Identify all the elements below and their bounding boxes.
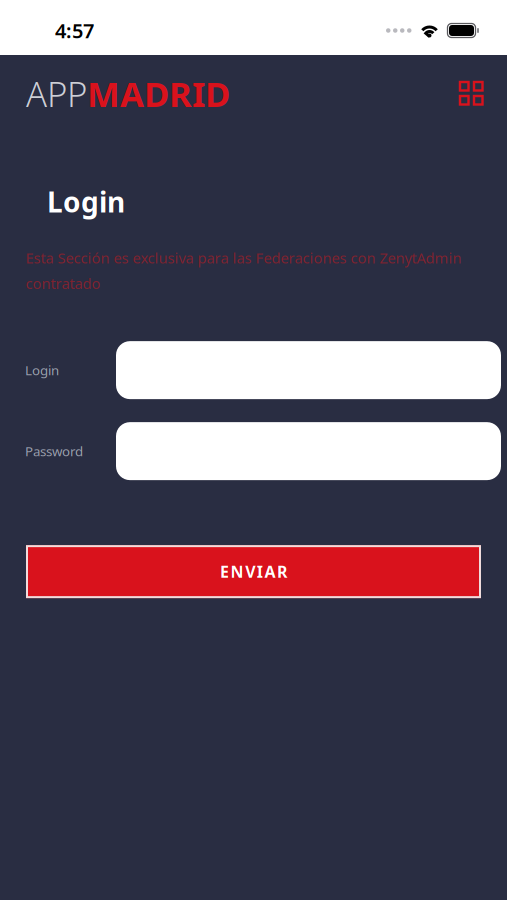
staticText: Password [25, 442, 83, 460]
staticText: ENVIAR [220, 561, 287, 582]
button[interactable]: Menu [460, 82, 483, 105]
staticText: 4:57 [55, 17, 94, 44]
staticText: Esta Sección es exclusiva para las Feder… [25, 248, 461, 268]
staticText: APP [26, 70, 87, 116]
button[interactable]: ENVIAR [26, 545, 481, 598]
button[interactable]: Login text field [116, 341, 501, 399]
staticText: Login [47, 183, 125, 220]
staticText: Login [25, 361, 59, 379]
button[interactable]: Password text field [116, 422, 501, 480]
staticText: contratado [25, 274, 100, 293]
staticText: MADRID [87, 70, 230, 116]
